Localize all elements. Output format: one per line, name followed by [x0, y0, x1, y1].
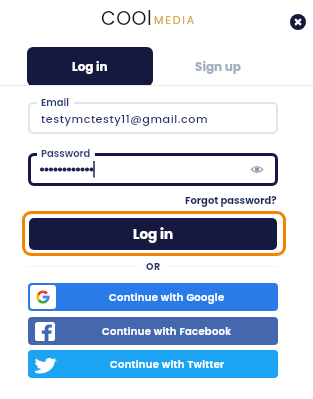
button[interactable]: Forgot password? [97, 193, 277, 207]
button[interactable]: Continue with Facebook [28, 317, 278, 345]
button[interactable]: Continue with Twitter [28, 350, 278, 378]
staticText: Email [41, 95, 70, 109]
staticText: Password [41, 146, 91, 160]
button[interactable] [290, 14, 306, 30]
staticText: Log in [133, 225, 174, 244]
staticText: MEDIA [154, 12, 197, 27]
staticText: testymctesty11@gmail.com [41, 111, 209, 127]
staticText: Continue with Google [109, 290, 225, 304]
staticText: Sign up [195, 58, 241, 75]
staticText: Log in [72, 58, 108, 75]
staticText: Continue with Twitter [110, 357, 225, 371]
staticText: Continue with Facebook [102, 324, 232, 338]
staticText: OR [146, 260, 161, 273]
button[interactable]: Log in [29, 218, 277, 250]
staticText: Forgot password? [185, 193, 277, 207]
staticText: COOl [101, 5, 153, 32]
button[interactable]: Sign up [153, 47, 283, 86]
button[interactable]: Log in [27, 47, 153, 86]
button[interactable]: Continue with Google [28, 283, 278, 311]
